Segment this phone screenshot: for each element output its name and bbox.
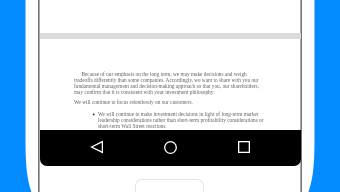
button[interactable]: Recent apps bbox=[231, 130, 257, 165]
button[interactable]: Home bbox=[157, 130, 183, 165]
staticText: Because of our emphasis on the long term… bbox=[74, 71, 261, 95]
staticText: We will continue to focus relentlessly o… bbox=[74, 99, 193, 105]
staticText: We will continue to make investment deci… bbox=[98, 111, 267, 129]
button[interactable]: Back bbox=[84, 130, 110, 165]
